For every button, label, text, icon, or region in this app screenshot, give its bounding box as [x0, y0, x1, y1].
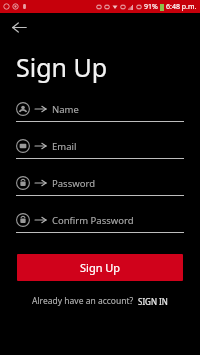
button[interactable]: Password [16, 176, 184, 196]
staticText: SIGN IN [138, 296, 168, 307]
staticText: 6:48 p.m. [166, 2, 197, 12]
staticText: Sign Up [80, 260, 121, 275]
button[interactable]: Sign Up [17, 254, 183, 281]
staticText: Password [52, 177, 95, 190]
staticText: Name [52, 103, 79, 116]
staticText: Confirm Password [52, 214, 134, 227]
staticText: Already have an account? [32, 295, 134, 307]
button[interactable]: Name [16, 102, 184, 122]
staticText: Email [52, 140, 77, 153]
staticText: 91% [144, 2, 158, 12]
button[interactable]: Back [8, 16, 30, 38]
button[interactable]: Email [16, 139, 184, 159]
staticText: Sign Up [16, 50, 108, 84]
button[interactable]: SIGN IN [138, 296, 168, 307]
button[interactable]: Confirm Password [16, 213, 184, 233]
